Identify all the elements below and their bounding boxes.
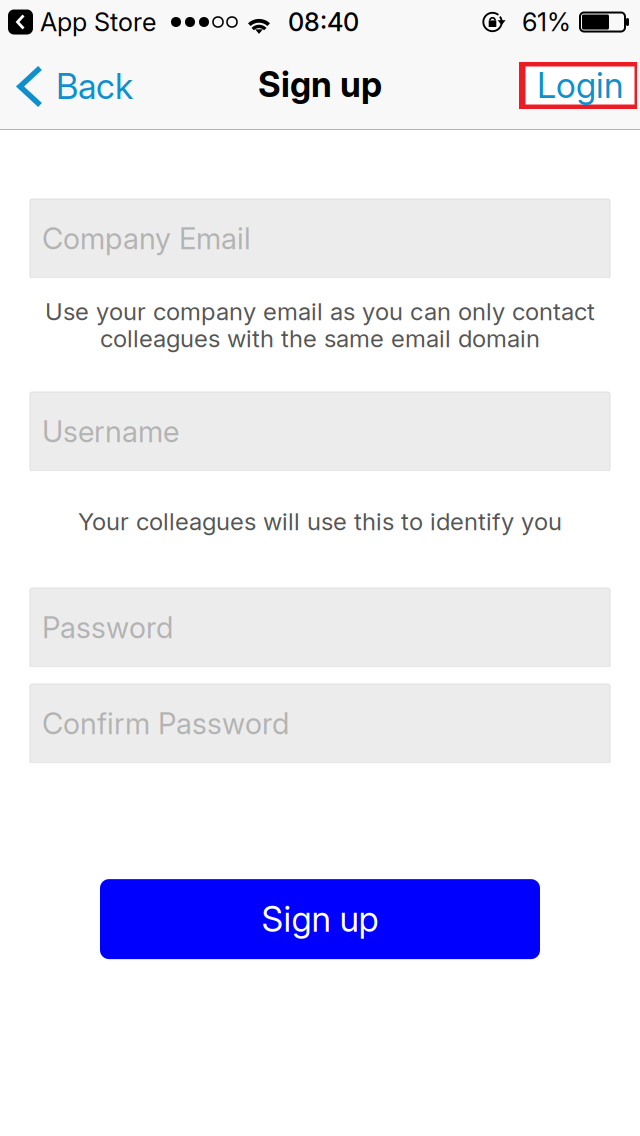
staticText: 61% [522,7,571,37]
button[interactable]: Confirm Password [30,684,610,763]
button[interactable]: Back [0,44,145,129]
staticText: App Store [40,7,156,37]
staticText: Use your company email as you can only c… [45,297,595,326]
staticText: Username [42,414,179,449]
staticText: 08:40 [288,7,359,37]
staticText: Login [537,64,623,106]
staticText: colleagues with the same email domain [100,324,540,353]
staticText: Back [56,65,133,107]
button[interactable]: Company Email [30,199,610,278]
staticText: Company Email [42,221,251,256]
staticText: Your colleagues will use this to identif… [78,507,562,536]
button[interactable]: Login [519,63,640,110]
staticText: Confirm Password [42,706,289,741]
staticText: Sign up [258,63,382,105]
staticText: Sign up [261,898,378,940]
button[interactable]: Password [30,588,610,667]
button[interactable]: Sign up [100,879,540,959]
button[interactable]: Username [30,392,610,471]
staticText: Password [42,610,173,645]
